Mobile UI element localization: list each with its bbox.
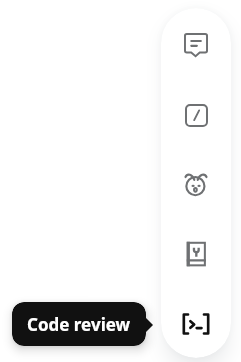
- button[interactable]: Documentation: [161, 230, 231, 278]
- button[interactable]: Comments: [161, 21, 231, 69]
- other: Comments: [184, 33, 208, 57]
- button[interactable]: Terminal: [161, 300, 231, 348]
- other: Bugs: [183, 173, 209, 199]
- button[interactable]: Code review: [12, 302, 146, 346]
- staticText: Code review: [27, 313, 131, 336]
- other: Code: [185, 104, 208, 127]
- button[interactable]: Bugs: [161, 162, 231, 210]
- button[interactable]: Code: [161, 91, 231, 139]
- other: Documentation: [183, 241, 209, 267]
- other: Terminal: [182, 310, 210, 338]
